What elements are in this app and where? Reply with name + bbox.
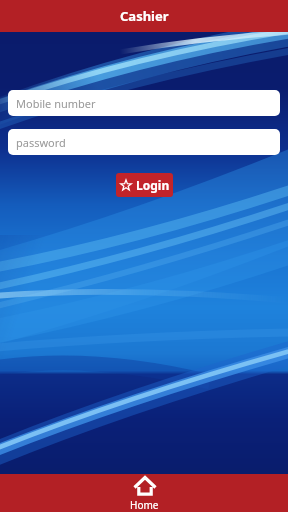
staticText: Login bbox=[136, 177, 170, 193]
button[interactable]: Login bbox=[116, 173, 173, 197]
staticText: password bbox=[16, 135, 66, 150]
button[interactable]: Cashier bbox=[0, 0, 288, 32]
staticText: Mobile number bbox=[16, 96, 96, 111]
button[interactable]: password bbox=[8, 129, 280, 155]
staticText: Cashier bbox=[120, 7, 169, 25]
button[interactable]: Mobile number bbox=[8, 90, 280, 116]
button[interactable]: Home bbox=[0, 474, 288, 512]
staticText: Home bbox=[130, 498, 159, 512]
